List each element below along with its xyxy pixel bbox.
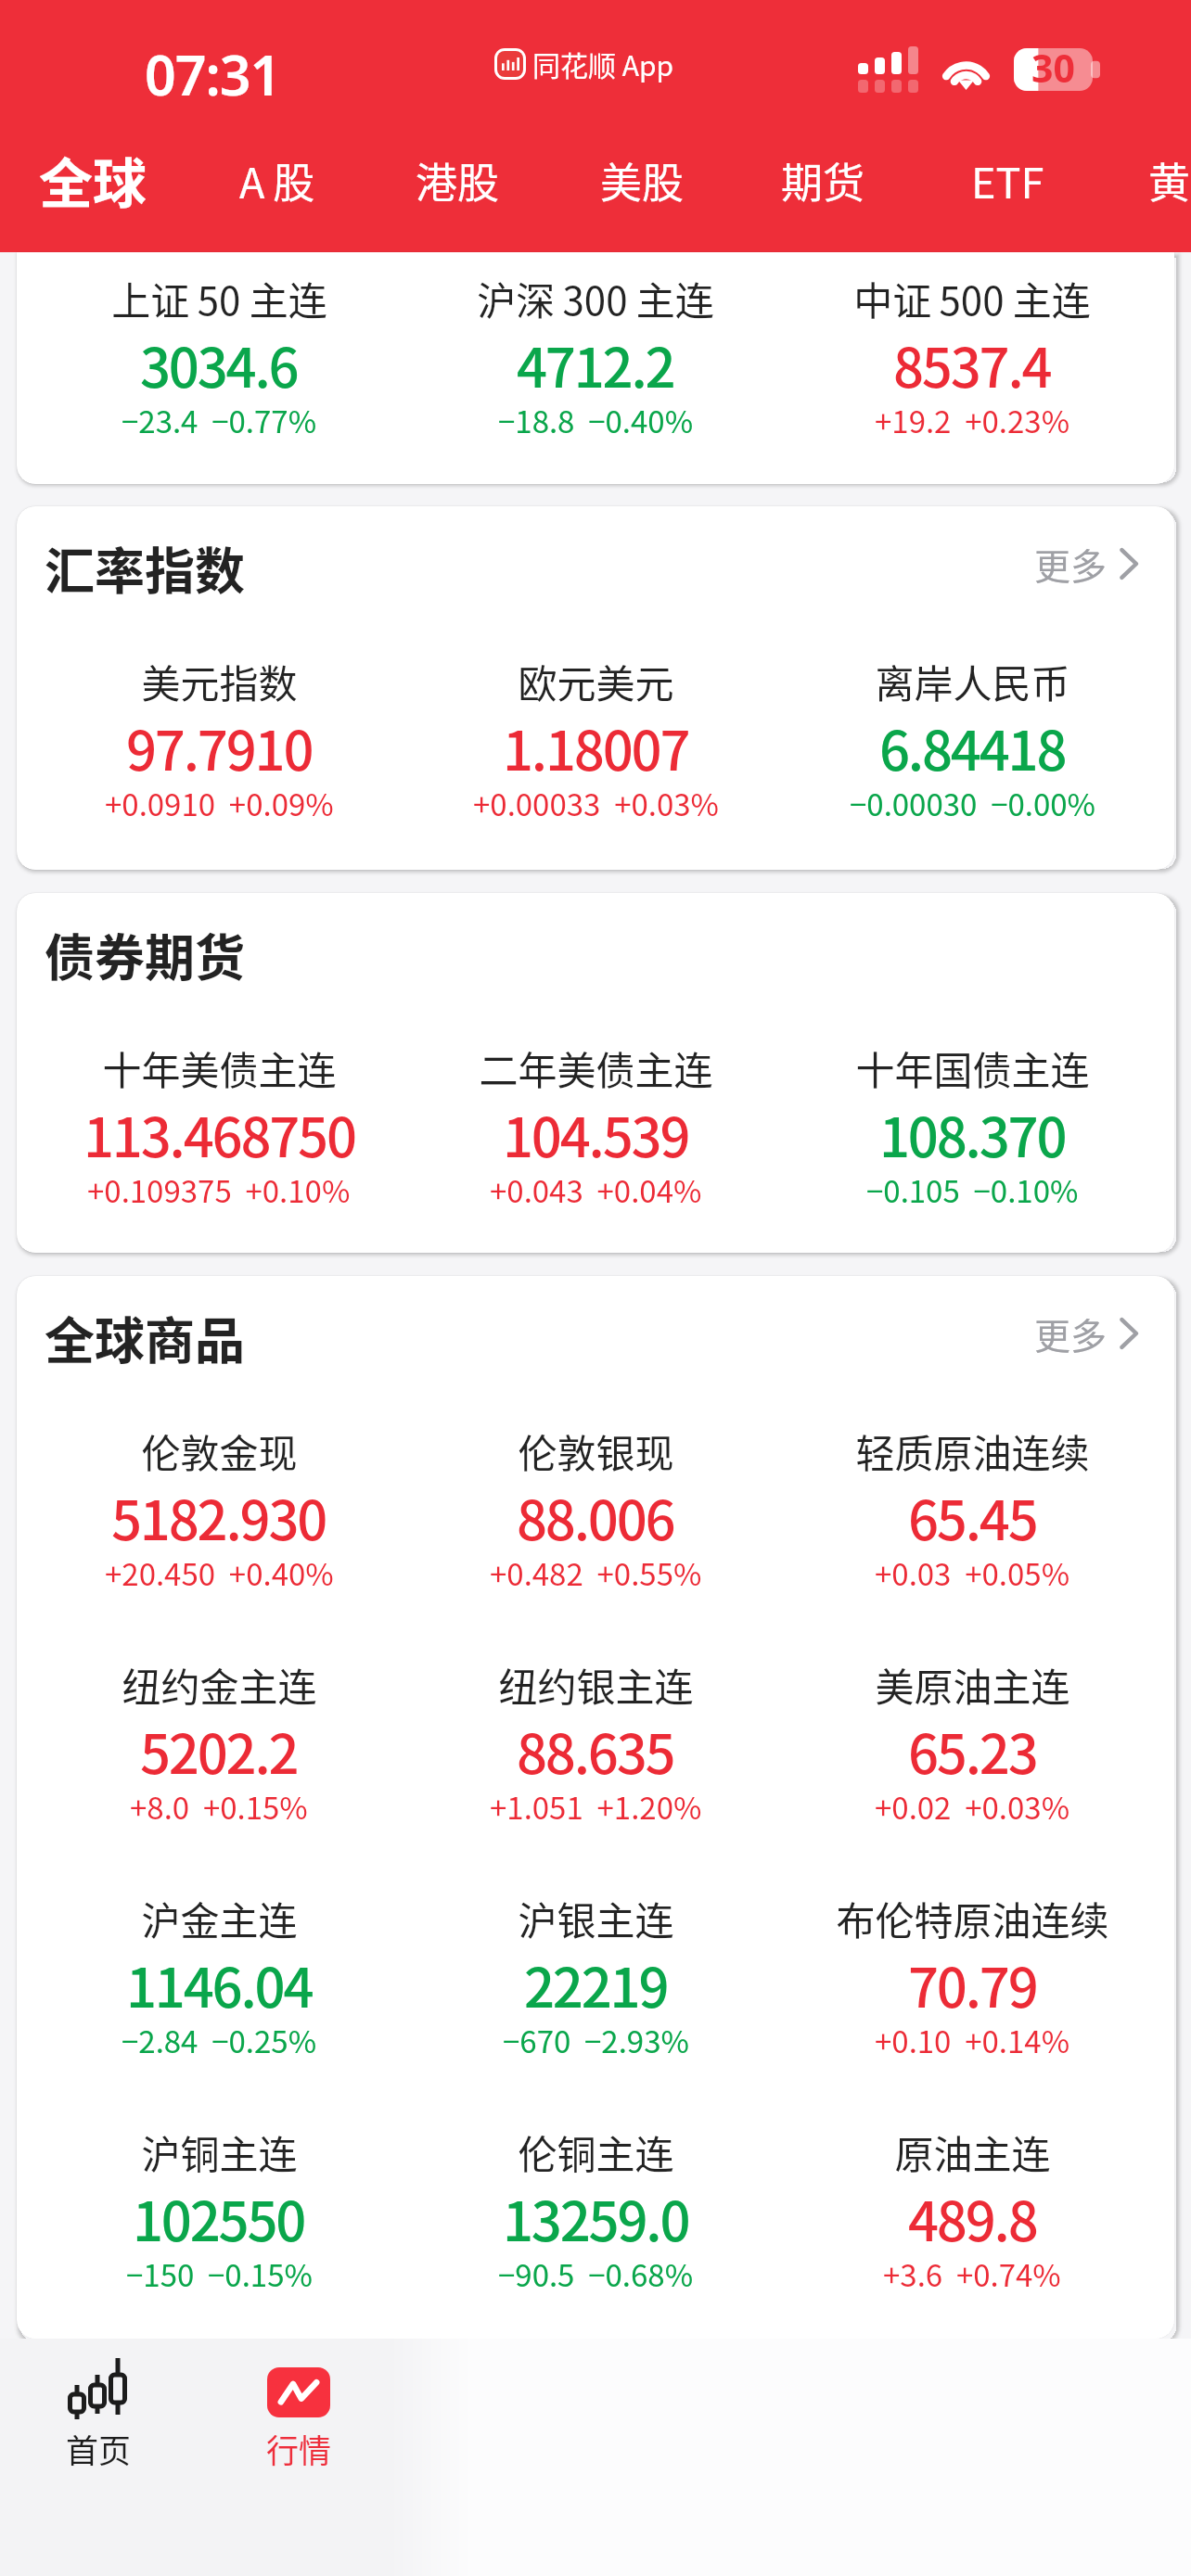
staticText: 4712.2 <box>517 325 674 403</box>
staticText: 原油主连 <box>894 2123 1051 2180</box>
staticText: 欧元美元 <box>518 653 674 709</box>
staticText: 布伦特原油连续 <box>836 1890 1109 1946</box>
button[interactable]: 行情 <box>249 2351 349 2488</box>
button[interactable]: 沪银主连 <box>407 1890 784 2038</box>
staticText: 70.79 <box>908 1945 1037 2023</box>
button[interactable]: 伦铜主连 <box>407 2123 784 2272</box>
staticText: −150 −0.15% <box>126 2251 313 2296</box>
button[interactable]: 伦敦金现 <box>31 1422 407 1571</box>
staticText: +19.2 +0.23% <box>875 398 1070 442</box>
button[interactable]: 沪深 300 主连 <box>407 270 784 418</box>
staticText: 十年国债主连 <box>855 1039 1090 1096</box>
staticText: −2.84 −0.25% <box>122 2018 317 2062</box>
staticText: 美原油主连 <box>875 1656 1070 1713</box>
staticText: 88.006 <box>517 1478 674 1556</box>
button[interactable]: ETF <box>915 134 1100 226</box>
staticText: 97.7910 <box>126 708 313 786</box>
button[interactable]: 原油主连 <box>784 2123 1160 2272</box>
button[interactable]: 期货 <box>730 134 916 226</box>
staticText: +0.0910 +0.09% <box>105 781 334 825</box>
staticText: +0.10 +0.14% <box>875 2018 1070 2062</box>
other: Battery 30 percent <box>1014 48 1102 91</box>
staticText: A 股 <box>239 150 315 210</box>
button[interactable]: 轻质原油连续 <box>784 1422 1160 1571</box>
staticText: 上证 50 主连 <box>111 270 327 326</box>
staticText: 30 <box>1031 42 1075 84</box>
staticText: 纽约金主连 <box>122 1656 317 1713</box>
staticText: +8.0 +0.15% <box>130 1784 308 1829</box>
staticText: 伦敦金现 <box>141 1422 298 1479</box>
staticText: 美股 <box>600 150 685 210</box>
staticText: 65.45 <box>908 1478 1037 1556</box>
button[interactable]: A 股 <box>185 134 370 226</box>
staticText: +3.6 +0.74% <box>883 2251 1061 2296</box>
staticText: 中证 500 主连 <box>853 270 1091 326</box>
button[interactable]: 美原油主连 <box>784 1656 1160 1804</box>
staticText: 更多 <box>1034 538 1108 590</box>
button[interactable]: 黄 <box>1077 134 1191 226</box>
button[interactable]: 二年美债主连 <box>407 1039 784 1188</box>
staticText: −18.8 −0.40% <box>498 398 694 442</box>
staticText: 13259.0 <box>503 2179 689 2257</box>
button[interactable]: 布伦特原油连续 <box>784 1890 1160 2038</box>
staticText: 07:31 <box>145 37 281 111</box>
staticText: −90.5 −0.68% <box>498 2251 694 2296</box>
button[interactable]: 纽约银主连 <box>407 1656 784 1804</box>
staticText: +1.051 +1.20% <box>490 1784 702 1829</box>
staticText: 108.370 <box>879 1095 1066 1173</box>
button[interactable]: 沪铜主连 <box>31 2123 407 2272</box>
button[interactable]: 欧元美元 <box>407 653 784 801</box>
button[interactable]: 十年国债主连 <box>784 1039 1160 1188</box>
button[interactable]: 美元指数 <box>31 653 407 801</box>
staticText: 汇率指数 <box>45 531 245 604</box>
button[interactable]: 美股 <box>549 134 735 226</box>
button[interactable]: 首页 <box>48 2351 148 2488</box>
button[interactable]: 更多 <box>1016 538 1174 590</box>
staticText: 债券期货 <box>45 918 245 990</box>
button[interactable]: 更多 <box>1016 1307 1174 1359</box>
staticText: 8537.4 <box>893 325 1051 403</box>
staticText: 65.23 <box>908 1712 1037 1790</box>
staticText: 行情 <box>266 2425 332 2472</box>
staticText: 489.8 <box>908 2179 1037 2257</box>
staticText: 22219 <box>524 1945 668 2023</box>
staticText: 十年美债主连 <box>102 1039 337 1096</box>
staticText: 更多 <box>1034 1307 1108 1359</box>
button[interactable]: 伦敦银现 <box>407 1422 784 1571</box>
staticText: 全球 <box>39 141 147 219</box>
staticText: +0.043 +0.04% <box>490 1167 702 1212</box>
button[interactable]: 全球 <box>0 134 186 226</box>
staticText: 6.84418 <box>879 708 1066 786</box>
button[interactable]: 离岸人民币 <box>784 653 1160 801</box>
button[interactable]: 纽约金主连 <box>31 1656 407 1804</box>
staticText: 沪深 300 主连 <box>477 270 714 326</box>
staticText: 纽约银主连 <box>498 1656 694 1713</box>
button[interactable]: 沪金主连 <box>31 1890 407 2038</box>
button[interactable]: 十年美债主连 <box>31 1039 407 1188</box>
staticText: 5182.930 <box>111 1478 327 1556</box>
staticText: −23.4 −0.77% <box>122 398 317 442</box>
staticText: 港股 <box>416 150 500 210</box>
staticText: 1.18007 <box>503 708 689 786</box>
staticText: 102550 <box>133 2179 305 2257</box>
staticText: 二年美债主连 <box>479 1039 713 1096</box>
staticText: 美元指数 <box>141 653 298 709</box>
other: Cellular signal <box>858 46 916 93</box>
staticText: 沪银主连 <box>518 1890 674 1946</box>
staticText: 轻质原油连续 <box>855 1422 1090 1479</box>
staticText: 沪金主连 <box>141 1890 298 1946</box>
staticText: +0.03 +0.05% <box>875 1550 1070 1595</box>
staticText: −670 −2.93% <box>503 2018 689 2062</box>
staticText: 88.635 <box>517 1712 674 1790</box>
staticText: 沪铜主连 <box>141 2123 298 2180</box>
button[interactable]: 港股 <box>365 134 550 226</box>
button[interactable]: 上证 50 主连 <box>31 270 407 418</box>
staticText: 伦铜主连 <box>518 2123 674 2180</box>
staticText: −0.00030 −0.00% <box>850 781 1095 825</box>
staticText: +0.482 +0.55% <box>490 1550 702 1595</box>
button[interactable]: 中证 500 主连 <box>784 270 1160 418</box>
staticText: −0.105 −0.10% <box>866 1167 1079 1212</box>
staticText: 104.539 <box>503 1095 689 1173</box>
staticText: +0.109375 +0.10% <box>87 1167 351 1212</box>
staticText: 3034.6 <box>140 325 298 403</box>
